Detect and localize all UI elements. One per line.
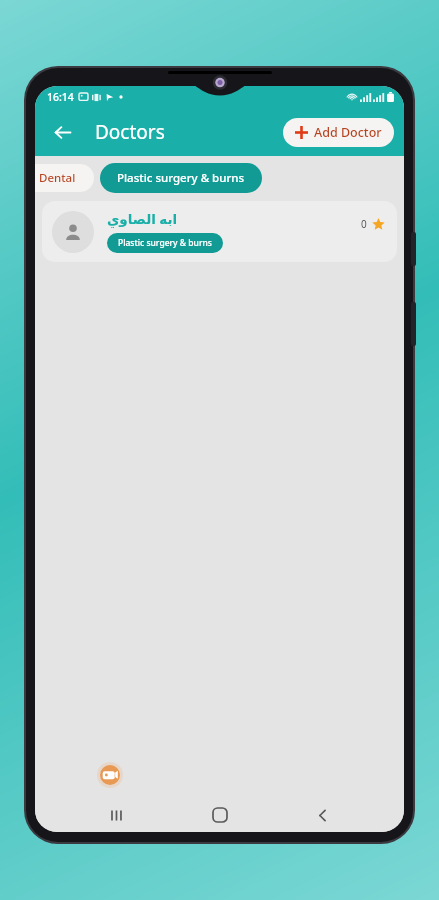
button[interactable]: Back bbox=[302, 798, 342, 832]
staticText: 16:14 bbox=[47, 90, 74, 104]
staticText: ابه الصاوي bbox=[107, 210, 178, 228]
button[interactable]: Home bbox=[200, 798, 240, 832]
staticText: Plastic surgery & burns bbox=[117, 170, 245, 186]
button[interactable]: Back bbox=[47, 117, 77, 147]
staticText: Plastic surgery & burns bbox=[118, 237, 212, 249]
staticText: Dental bbox=[39, 170, 76, 186]
button[interactable]: Screen recorder bbox=[97, 762, 123, 788]
staticText: 0 bbox=[361, 217, 367, 231]
button[interactable]: Plastic surgery & burns bbox=[100, 163, 262, 193]
staticText: Add Doctor bbox=[314, 124, 382, 141]
button[interactable]: Add Doctor bbox=[283, 118, 394, 147]
button[interactable]: Dental bbox=[35, 164, 94, 192]
button[interactable]: ابه الصاوي bbox=[42, 201, 397, 262]
button[interactable]: Recents bbox=[97, 798, 137, 832]
staticText: Doctors bbox=[95, 119, 165, 145]
